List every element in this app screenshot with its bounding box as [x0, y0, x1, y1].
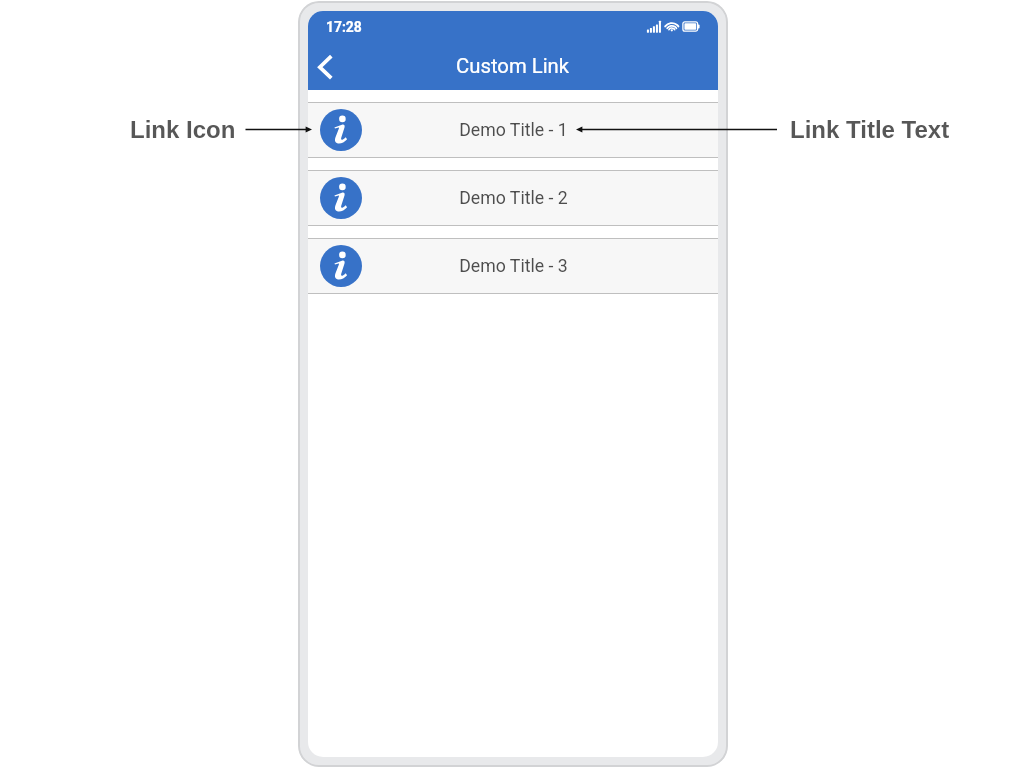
button[interactable]: Back: [308, 44, 354, 90]
staticText: Link Title Text: [790, 116, 950, 143]
button[interactable]: Demo Title - 2: [308, 170, 718, 226]
staticText: Custom Link: [456, 54, 570, 78]
staticText: Demo Title - 2: [459, 188, 568, 209]
staticText: Link Icon: [130, 116, 236, 143]
button[interactable]: Demo Title - 1: [308, 102, 718, 158]
staticText: Demo Title - 1: [459, 120, 568, 141]
staticText: 17:28: [326, 19, 362, 35]
staticText: Demo Title - 3: [459, 256, 568, 277]
button[interactable]: Demo Title - 3: [308, 238, 718, 294]
